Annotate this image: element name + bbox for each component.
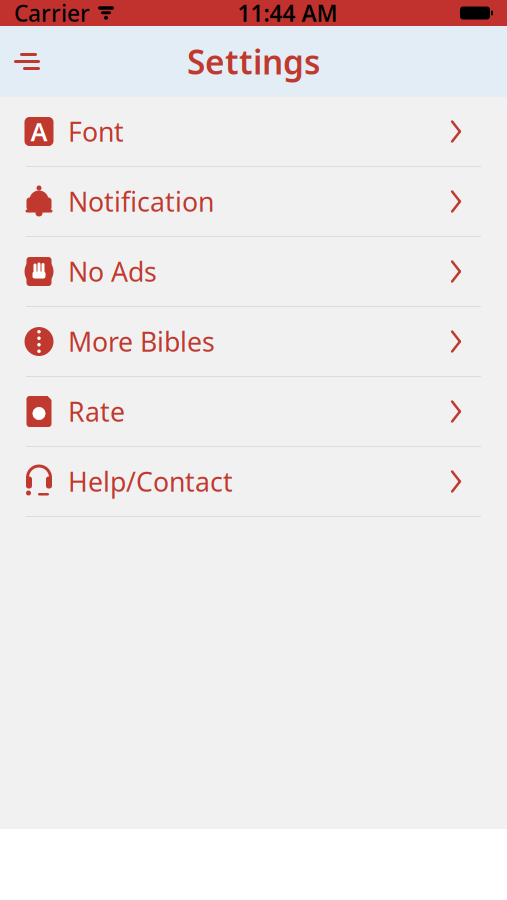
button[interactable]: Notification [0,167,507,236]
staticText: More Bibles [68,324,215,359]
staticText: No Ads [68,254,157,289]
button[interactable]: A [0,97,507,166]
button[interactable]: Menu [0,34,54,88]
staticText: Carrier [14,0,90,28]
staticText: 11:44 AM [237,0,337,28]
staticText: Rate [68,394,125,429]
staticText: Settings [187,39,320,84]
button[interactable]: Help/Contact [0,447,507,516]
button[interactable]: Rate [0,377,507,446]
staticText: A [30,115,47,148]
staticText: Help/Contact [68,464,233,499]
staticText: Notification [68,184,214,219]
staticText: Font [68,114,124,149]
button[interactable]: More Bibles [0,307,507,376]
button[interactable]: No Ads [0,237,507,306]
